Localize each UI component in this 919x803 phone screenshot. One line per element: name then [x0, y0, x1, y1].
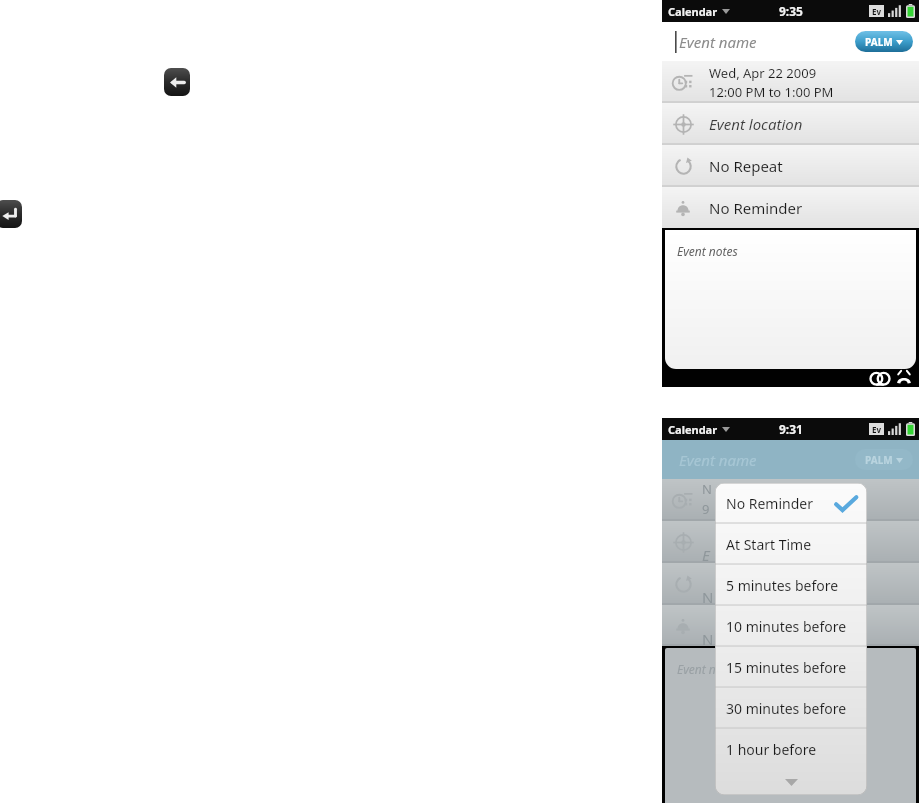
button[interactable]: At Start Time — [715, 524, 867, 565]
staticText: Event name — [679, 450, 757, 470]
button[interactable]: Event notes — [665, 230, 916, 369]
staticText: Event notes — [677, 661, 738, 677]
staticText: 10 minutes before — [726, 617, 847, 636]
button[interactable]: Event name — [662, 22, 919, 61]
staticText: N — [702, 480, 712, 498]
staticText: At Start Time — [726, 535, 812, 554]
staticText: 1 hour before — [726, 740, 817, 759]
staticText: 15 minutes before — [726, 658, 847, 677]
staticText: Event notes — [677, 243, 738, 259]
button[interactable]: End call — [895, 369, 913, 387]
staticText: Calendar — [668, 422, 718, 437]
button[interactable]: 1 hour before — [715, 729, 867, 770]
staticText: N — [702, 629, 714, 649]
button[interactable]: 30 minutes before — [715, 688, 867, 729]
staticText: 30 minutes before — [726, 699, 847, 718]
button[interactable]: Back key — [164, 68, 190, 96]
button[interactable]: Enter key — [0, 200, 22, 228]
button[interactable]: PALM — [855, 31, 913, 52]
staticText: PALM — [865, 35, 893, 49]
staticText: 9 — [702, 500, 710, 518]
staticText: 9:35 — [779, 3, 803, 19]
staticText: 5 minutes before — [726, 576, 839, 595]
staticText: Event name — [679, 32, 757, 52]
button[interactable]: Wed, Apr 22 2009 — [662, 61, 919, 103]
staticText: N — [702, 587, 714, 607]
button[interactable]: Calendar — [668, 422, 730, 437]
button[interactable]: 5 minutes before — [715, 565, 867, 606]
staticText: Ev — [872, 6, 882, 17]
staticText: Calendar — [668, 4, 718, 19]
button[interactable]: No Reminder — [662, 187, 919, 228]
staticText: No Reminder — [709, 198, 803, 218]
staticText: Event location — [709, 114, 803, 134]
staticText: 12:00 PM to 1:00 PM — [709, 83, 834, 101]
button[interactable]: 15 minutes before — [715, 647, 867, 688]
staticText: Ev — [872, 424, 882, 435]
button[interactable]: No Repeat — [662, 145, 919, 187]
button[interactable]: More options — [715, 770, 867, 795]
staticText: No Reminder — [726, 494, 813, 513]
staticText: PALM — [865, 453, 893, 467]
staticText: E — [702, 545, 710, 565]
button[interactable]: Event location — [662, 103, 919, 145]
button[interactable]: No Reminder — [715, 483, 867, 524]
staticText: Wed, Apr 22 2009 — [709, 64, 817, 82]
staticText: No Repeat — [709, 156, 783, 176]
button[interactable]: Calendar — [668, 4, 730, 19]
button[interactable]: 10 minutes before — [715, 606, 867, 647]
staticText: 9:31 — [779, 421, 803, 437]
button[interactable]: Voicemail — [870, 371, 890, 385]
